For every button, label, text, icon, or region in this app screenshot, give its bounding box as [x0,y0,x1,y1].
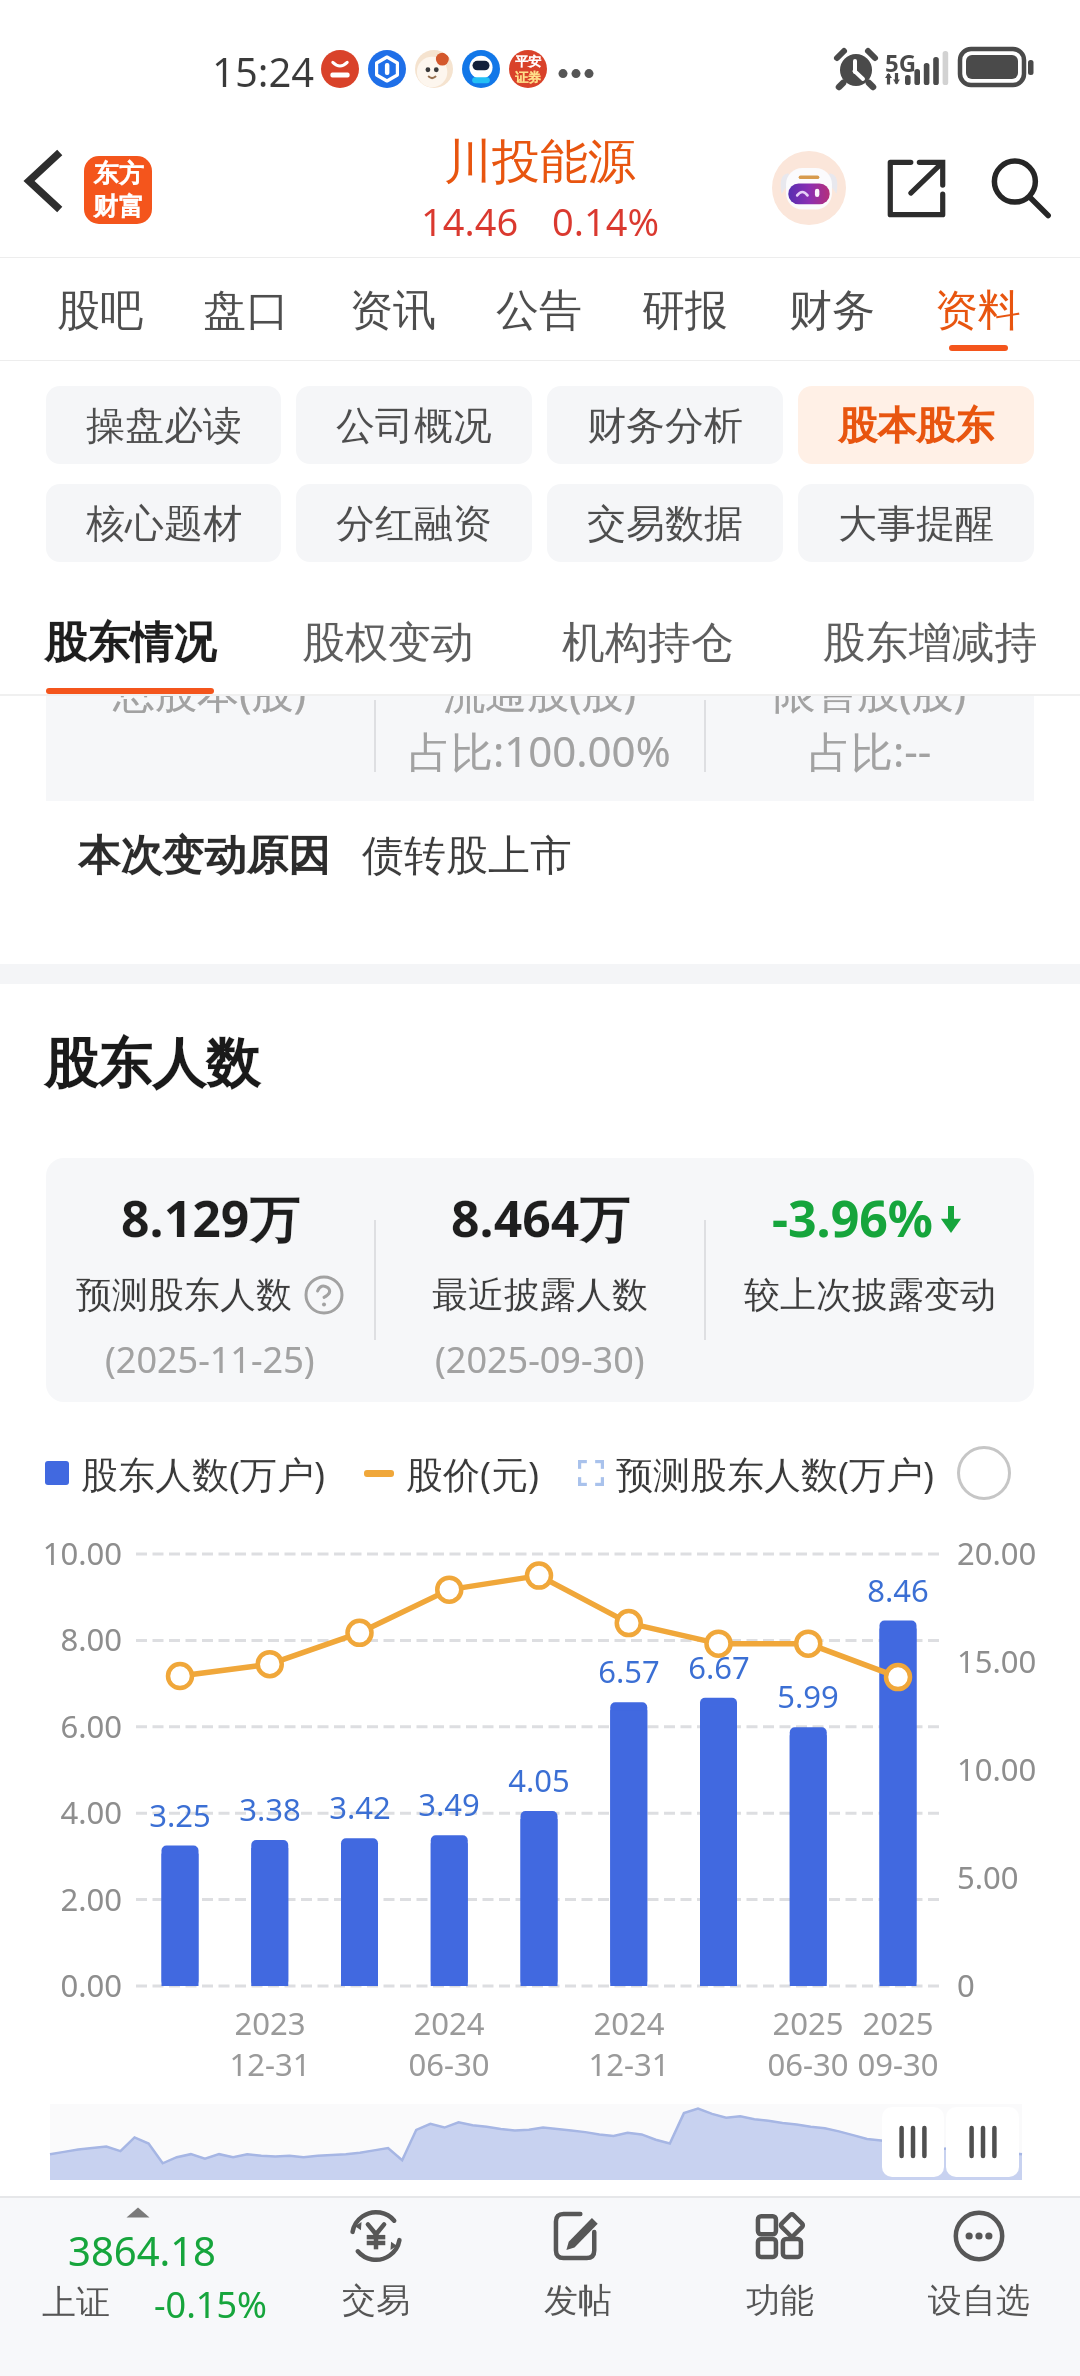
button[interactable]: 交易 [286,2196,466,2376]
button[interactable]: 股东情况 [0,566,260,696]
button[interactable]: 股本股东 [798,386,1034,464]
staticText: 证券 [515,69,541,85]
button[interactable]: More chart options [957,1446,1011,1500]
button[interactable]: 股东增减持 [800,566,1060,696]
button[interactable]: 3864.18 [0,2196,310,2376]
staticText: 占比:100.00% [409,722,671,779]
staticText: 股东情况 [0,616,260,670]
staticText: 8.46 [828,1569,968,1611]
button[interactable]: Share [873,145,959,231]
staticText: 预测股东人数(万户) [616,1448,935,1499]
button[interactable]: 大事提醒 [798,484,1034,562]
button[interactable]: 分红融资 [296,484,532,562]
staticText: 股东人数(万户) [81,1448,326,1499]
staticText: 15.00 [957,1640,1037,1682]
staticText: 最近披露人数 [432,1272,648,1317]
staticText: 交易 [286,2279,466,2322]
button[interactable]: 财务 [759,257,905,361]
staticText: 12-31 [559,2043,699,2085]
button[interactable]: Range handle right [946,2107,1019,2177]
staticText: 3.25 [110,1794,250,1836]
staticText: 股东人数 [44,1030,260,1098]
staticText: 6.57 [559,1650,699,1692]
staticText: 流通股(股) [443,663,637,720]
staticText: 2025 [828,2002,968,2044]
button[interactable]: 财务分析 [547,386,783,464]
staticText: 3.42 [290,1786,430,1828]
staticText: 债转股上市 [362,830,572,883]
staticText: 20.00 [957,1532,1037,1574]
staticText: 发帖 [488,2279,668,2322]
staticText: 限售股(股) [773,663,967,720]
staticText: 财富 [93,191,144,222]
staticText: 06-30 [379,2043,519,2085]
staticText: 股吧 [27,284,173,338]
staticText: 股权变动 [258,616,518,670]
staticText: 功能 [690,2279,870,2322]
staticText: 上证 [42,2281,110,2324]
staticText: 5G [885,46,917,79]
staticText: 川投能源 [340,132,740,192]
staticText: 8.129万 [121,1184,300,1252]
staticText: 06-30 [738,2043,878,2085]
staticText: 2024 [559,2002,699,2044]
staticText: 3.38 [200,1788,340,1830]
button[interactable]: 操盘必读 [46,386,281,464]
button[interactable]: 资讯 [320,257,466,361]
staticText: 14.46 [421,195,519,247]
staticText: 0.14% [552,195,659,247]
staticText: 2.00 [0,1878,122,1920]
button[interactable]: 盘口 [173,257,319,361]
button[interactable]: East Money home [84,156,152,224]
staticText: 3864.18 [68,2223,216,2277]
staticText: 10.00 [957,1748,1037,1790]
staticText: 8.00 [0,1618,122,1660]
staticText: 较上次披露变动 [744,1272,996,1317]
staticText: 平安 [515,53,541,69]
button[interactable]: Range handle left [882,2107,944,2177]
staticText: 资讯 [320,284,466,338]
staticText: 2023 [200,2002,340,2044]
button[interactable]: 交易数据 [547,484,783,562]
staticText: 资料 [905,284,1051,338]
staticText: 核心题材 [86,499,242,548]
button[interactable]: 核心题材 [46,484,281,562]
staticText: 公司概况 [336,401,492,450]
button[interactable]: AI assistant [772,151,846,225]
button[interactable]: 川投能源 [340,120,740,256]
staticText: 3.49 [379,1783,519,1825]
staticText: 分红融资 [336,499,492,548]
staticText: 8.464万 [451,1184,630,1252]
button[interactable]: 研报 [612,257,758,361]
button[interactable]: 股吧 [27,257,173,361]
staticText: 股价(元) [406,1448,540,1499]
staticText: 4.00 [0,1791,122,1833]
staticText: 公告 [466,284,612,338]
button[interactable]: Search [977,145,1063,231]
staticText: (2025-09-30) [435,1335,645,1384]
staticText: 股本股东 [838,401,994,450]
staticText: (2025-11-25) [105,1335,315,1384]
button[interactable]: 公司概况 [296,386,532,464]
staticText: 研报 [612,284,758,338]
staticText: 本次变动原因 [78,830,330,883]
staticText: 机构持仓 [518,616,778,670]
staticText: 财务 [759,284,905,338]
button[interactable]: 发帖 [488,2196,668,2376]
button[interactable]: 公告 [466,257,612,361]
staticText: 设自选 [889,2279,1069,2322]
button[interactable]: 设自选 [889,2196,1069,2376]
button[interactable]: 资料 [905,257,1051,361]
button[interactable]: 股权变动 [258,566,518,696]
staticText: 09-30 [828,2043,968,2085]
button[interactable]: 机构持仓 [518,566,778,696]
staticText: 股东增减持 [800,616,1060,670]
button[interactable]: 功能 [690,2196,870,2376]
staticText: 2025 [738,2002,878,2044]
staticText: 东方 [93,158,144,189]
staticText: 0.00 [0,1964,122,2006]
staticText: 12-31 [200,2043,340,2085]
staticText: -0.15% [154,2280,267,2329]
button[interactable]: Back [2,140,84,222]
staticText: 盘口 [173,284,319,338]
